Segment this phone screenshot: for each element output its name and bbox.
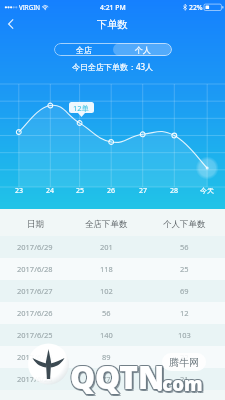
staticText: 201 (100, 242, 113, 252)
staticText: 全店 (76, 45, 92, 55)
staticText: 2017/6/28 (17, 264, 53, 274)
staticText: 4:21 PM (100, 3, 126, 12)
staticText: QQTN (70, 357, 165, 400)
staticText: 22% (189, 3, 203, 12)
staticText: 2017/6/25 (17, 330, 53, 340)
staticText: 2017/6/23 (17, 374, 53, 384)
staticText: .com (156, 372, 202, 397)
staticText: 个人下单数 (163, 219, 206, 230)
staticText: 2017/6/26 (17, 308, 53, 318)
staticText: 56 (102, 308, 111, 318)
staticText: 日期 (27, 219, 44, 230)
button[interactable]: 2017/6/29 (0, 236, 225, 258)
staticText: 102 (100, 286, 113, 296)
staticText: 140 (100, 330, 113, 340)
staticText: 56 (180, 242, 189, 252)
staticText: 21 (180, 374, 189, 384)
staticText: .com (158, 372, 204, 397)
button[interactable]: 2017/6/23 (0, 368, 225, 390)
staticText: 2017/6/24 (17, 352, 53, 362)
staticText: 77 (102, 374, 111, 384)
staticText: QQTN (71, 354, 166, 397)
staticText: .com (156, 370, 202, 395)
staticText: 2017/6/29 (17, 242, 53, 252)
staticText: 2017/6/27 (17, 286, 53, 296)
staticText: QQTN (70, 355, 165, 398)
staticText: 今天 (200, 186, 214, 195)
staticText: QQTN (69, 356, 164, 399)
staticText: 腾牛网 (169, 356, 199, 369)
staticText: 今日全店下单数：43人 (72, 61, 154, 72)
staticText: 28 (170, 186, 179, 196)
staticText: QQTN (69, 355, 164, 398)
staticText: .com (158, 370, 204, 395)
button[interactable]: 2017/6/25 (0, 324, 225, 346)
staticText: .com (156, 371, 202, 396)
staticText: QQTN (70, 354, 165, 397)
staticText: 23 (15, 186, 24, 196)
staticText: 个人 (135, 45, 151, 55)
staticText: 26 (107, 186, 116, 196)
staticText: .com (157, 373, 203, 398)
staticText: .com (159, 371, 205, 396)
staticText: 32 (180, 352, 189, 362)
button[interactable]: 2017/6/26 (0, 302, 225, 324)
staticText: 69 (180, 286, 189, 296)
staticText: .com (157, 371, 203, 396)
staticText: 27 (139, 186, 148, 196)
staticText: .com (159, 373, 205, 398)
staticText: 全店下单数 (85, 219, 128, 230)
staticText: QQTN (72, 355, 167, 398)
staticText: 12单 (73, 103, 90, 113)
staticText: 25 (180, 264, 189, 274)
button[interactable]: 全店 (54, 43, 113, 56)
staticText: 118 (100, 264, 113, 274)
staticText: VIRGIN (19, 3, 40, 11)
staticText: QQTN (72, 357, 167, 400)
staticText: 89 (102, 352, 111, 362)
staticText: .com (157, 370, 203, 395)
button[interactable]: 2017/6/24 (0, 346, 225, 368)
staticText: 25 (76, 186, 85, 196)
staticText: 103 (178, 330, 191, 340)
button[interactable]: 个人 (113, 43, 172, 56)
staticText: 下单数 (97, 18, 128, 31)
staticText: 12 (180, 308, 189, 318)
staticText: QQTN (71, 356, 166, 399)
staticText: 24 (46, 186, 55, 196)
staticText: QQTN (69, 354, 164, 397)
button[interactable]: 2017/6/28 (0, 258, 225, 280)
button[interactable]: 2017/6/27 (0, 280, 225, 302)
button[interactable]: Back (0, 14, 22, 34)
